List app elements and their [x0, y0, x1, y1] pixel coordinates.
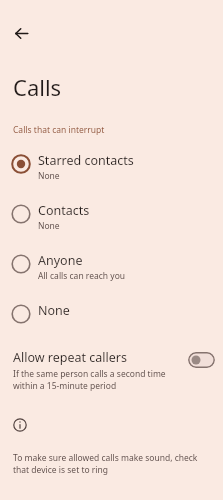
staticText: Starred contacts [38, 152, 134, 169]
staticText: To make sure allowed calls make sound, c… [13, 452, 210, 476]
button[interactable]: Information [9, 414, 31, 436]
button[interactable]: None [0, 295, 223, 331]
staticText: None [38, 170, 60, 182]
button[interactable]: Allow repeat callers [0, 345, 223, 396]
button[interactable]: Anyone [0, 245, 223, 289]
staticText: If the same person calls a second time w… [13, 368, 182, 392]
staticText: Calls that can interrupt [13, 124, 105, 136]
button[interactable]: Allow repeat callers toggle [188, 352, 215, 368]
staticText: Contacts [38, 202, 90, 219]
staticText: None [38, 302, 70, 319]
button[interactable]: Contacts [0, 195, 223, 239]
staticText: Anyone [38, 252, 83, 269]
button[interactable]: Back [6, 18, 36, 48]
staticText: None [38, 220, 60, 232]
staticText: Calls [13, 72, 62, 102]
button[interactable]: Starred contacts [0, 145, 223, 189]
staticText: Allow repeat callers [13, 349, 127, 366]
staticText: All calls can reach you [38, 270, 126, 282]
